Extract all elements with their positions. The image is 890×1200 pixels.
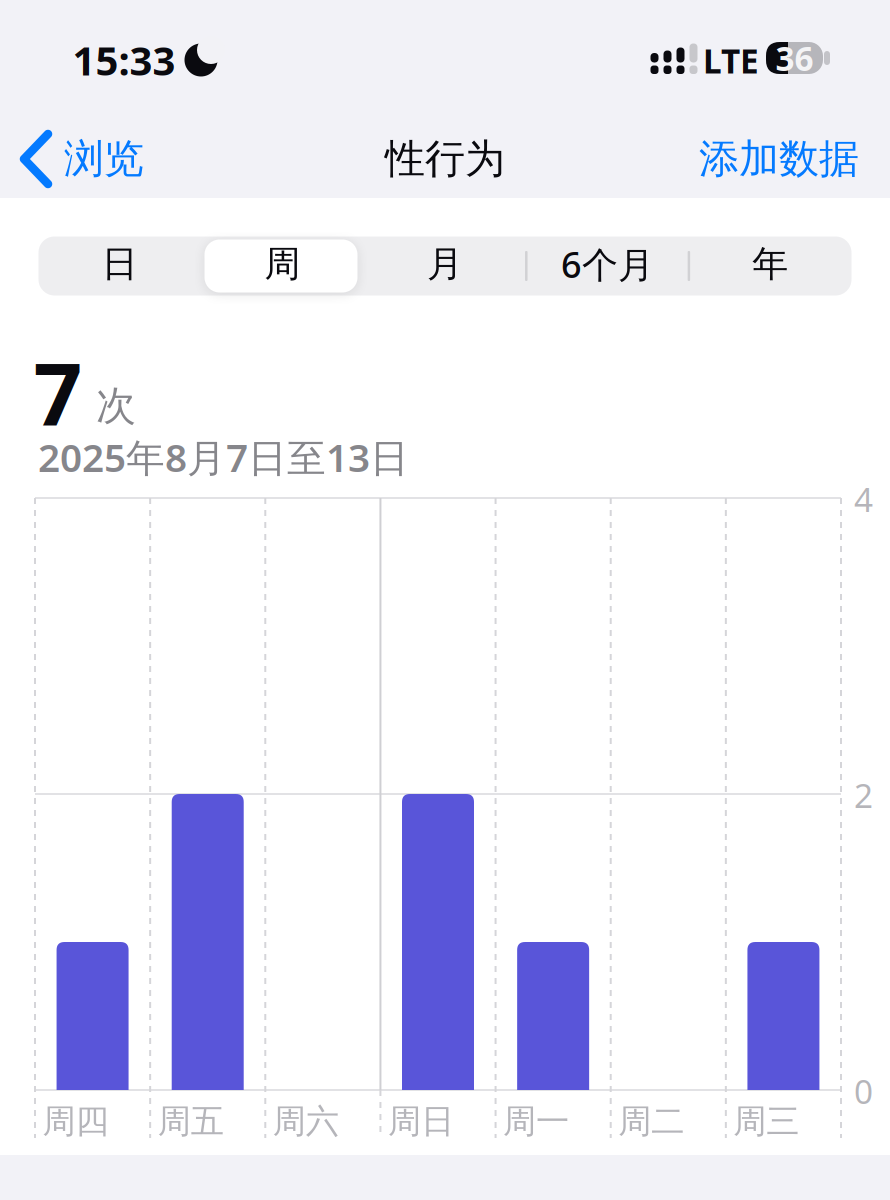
staticText: 日: [102, 242, 138, 286]
staticText: 周三: [733, 1101, 799, 1142]
staticText: 0: [854, 1069, 873, 1113]
staticText: 性行为: [385, 134, 505, 183]
staticText: 4: [854, 477, 873, 521]
button[interactable]: 6个月: [526, 234, 689, 293]
button[interactable]: 日: [38, 234, 201, 293]
staticText: 周: [264, 242, 300, 286]
staticText: 2: [854, 773, 873, 817]
button[interactable]: 添加数据: [699, 128, 859, 190]
staticText: 15:33: [72, 33, 175, 86]
button[interactable]: 周: [201, 234, 364, 293]
staticText: 周四: [42, 1101, 108, 1142]
staticText: 7: [33, 336, 82, 450]
staticText: 月: [427, 242, 463, 286]
staticText: LTE: [703, 38, 759, 83]
button[interactable]: 浏览: [24, 128, 144, 190]
staticText: 2025年8月7日至13日: [38, 431, 409, 483]
staticText: 次: [96, 381, 136, 430]
staticText: 周五: [158, 1101, 224, 1142]
staticText: 浏览: [64, 134, 144, 183]
staticText: 周日: [388, 1101, 454, 1142]
button[interactable]: 月: [364, 234, 526, 293]
staticText: 周六: [273, 1101, 339, 1142]
staticText: 添加数据: [699, 134, 859, 183]
staticText: 年: [752, 242, 788, 286]
staticText: 6个月: [561, 240, 654, 288]
staticText: 周二: [618, 1101, 684, 1142]
staticText: 36: [775, 36, 813, 80]
button[interactable]: 年: [689, 234, 851, 293]
staticText: 周一: [503, 1101, 569, 1142]
